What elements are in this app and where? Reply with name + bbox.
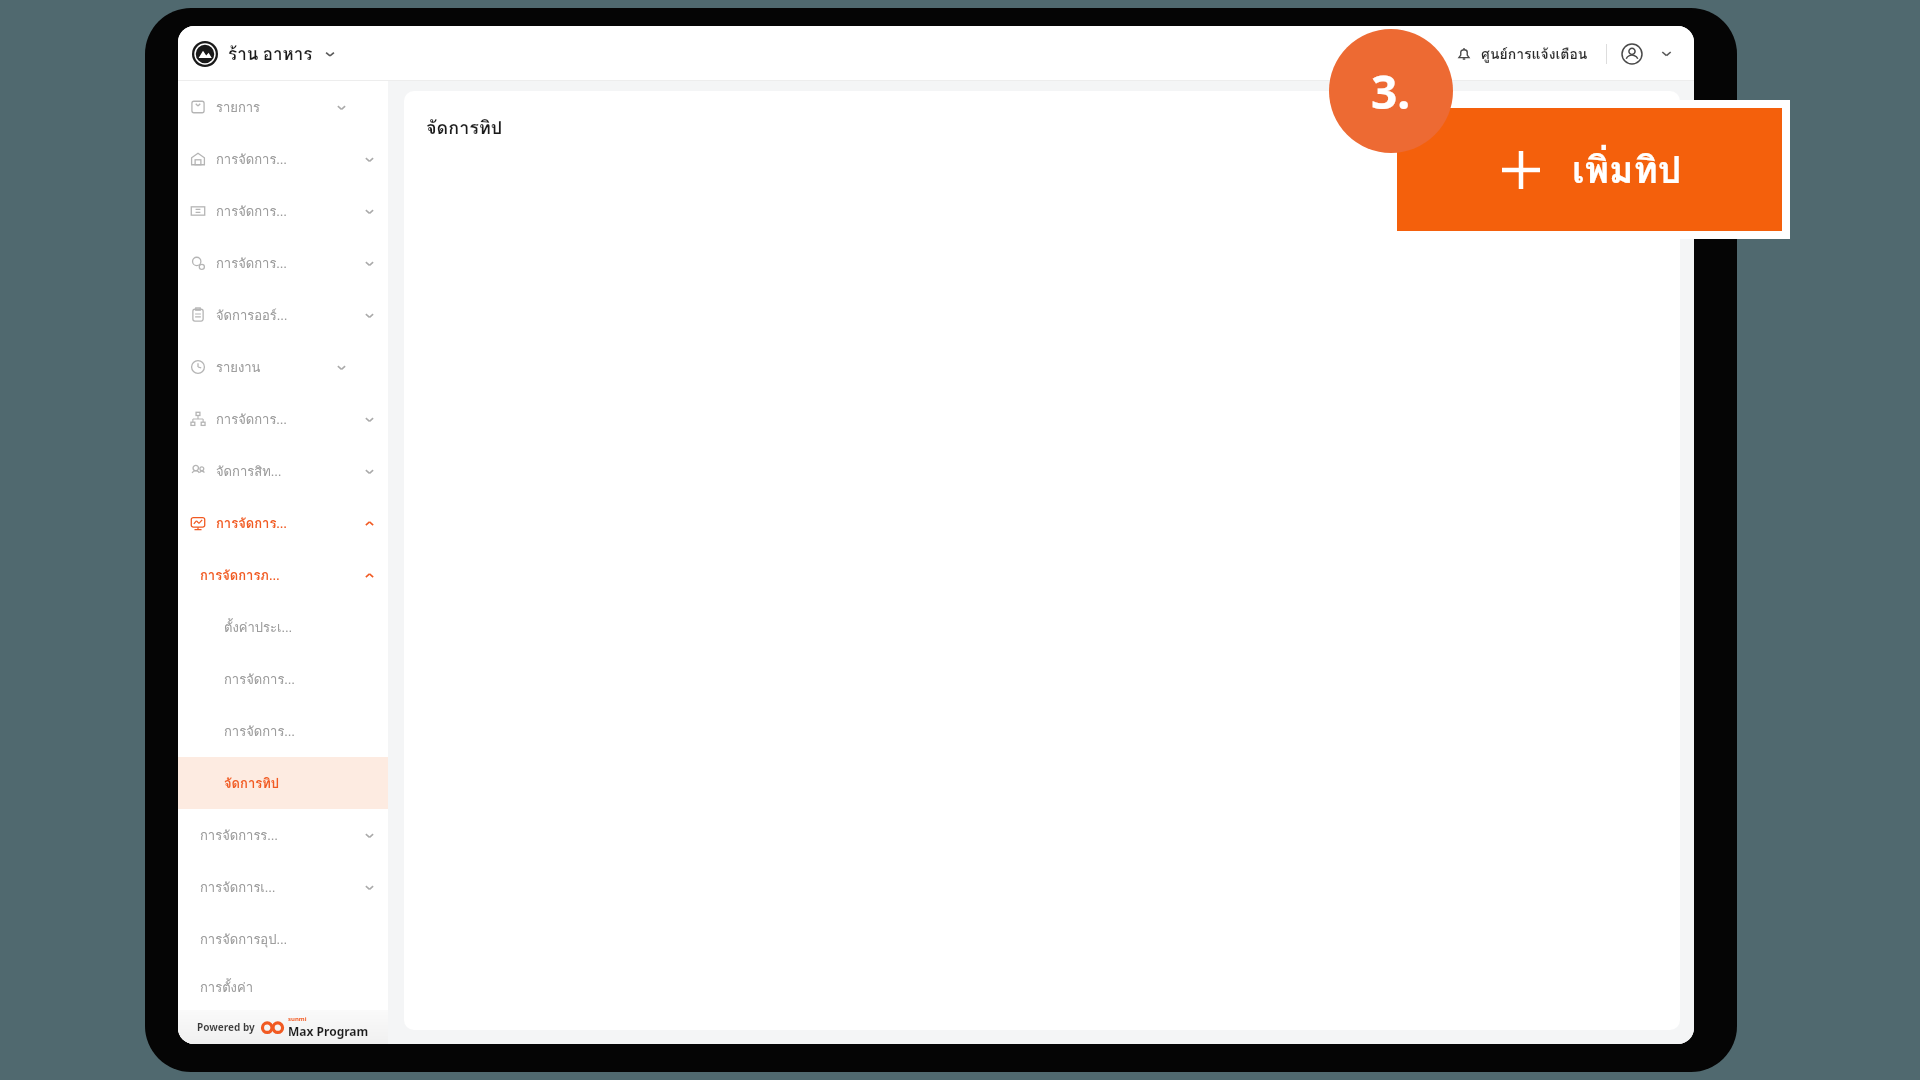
- staticText: รายงาน: [216, 357, 261, 378]
- button[interactable]: เพิ่มทิป: [1397, 108, 1782, 231]
- button[interactable]: การจัดการอุปกรณ์: [178, 913, 388, 965]
- other: Notifications: [1455, 45, 1473, 63]
- staticText: การจัดการภาษี: [224, 721, 300, 742]
- button[interactable]: จัดการออร์เดอร์: [178, 289, 388, 341]
- button[interactable]: การจัดการระบบโต๊ะ: [178, 809, 388, 861]
- staticText: การจัดการสินค้าในสต๊...: [216, 149, 289, 170]
- staticText: การตั้งค่า: [200, 977, 253, 998]
- staticText: การจัดการเครื่องพิมพ์: [200, 877, 281, 898]
- button[interactable]: การจัดการภาษี/ประเภ...: [178, 549, 388, 601]
- button[interactable]: Account: [1621, 43, 1643, 65]
- staticText: Powered by: [197, 1020, 255, 1034]
- staticText: 3.: [1371, 60, 1411, 123]
- staticText: จัดการสิทธิ์บัญชี: [216, 461, 289, 482]
- staticText: การจัดการอุปกรณ์: [200, 929, 288, 950]
- button[interactable]: More: [1659, 46, 1674, 61]
- staticText: จัดการทิป: [426, 113, 503, 142]
- button[interactable]: การจัดการค่าบริการเ...: [178, 653, 388, 705]
- staticText: ร้าน อาหาร: [228, 40, 313, 67]
- staticText: การจัดการตั้งค่าทั้งหมด: [216, 513, 289, 534]
- button[interactable]: Notifications: [1451, 37, 1592, 71]
- button[interactable]: การจัดการภาษี: [178, 705, 388, 757]
- button[interactable]: จัดการสิทธิ์บัญชี: [178, 445, 388, 497]
- staticText: sunmi: [288, 1015, 307, 1023]
- button[interactable]: การจัดการสินค้าในสต๊...: [178, 133, 388, 185]
- button[interactable]: การจัดการช่องทาง Gr...: [178, 393, 388, 445]
- button[interactable]: รายการ: [178, 81, 388, 133]
- staticText: การจัดการส่วนลด: [216, 201, 289, 222]
- staticText: ตั้งค่าประเภทการชำระ...: [224, 617, 300, 638]
- staticText: การจัดการระบบสมาชิก: [216, 253, 289, 274]
- staticText: จัดการทิป: [224, 773, 280, 794]
- button[interactable]: การจัดการเครื่องพิมพ์: [178, 861, 388, 913]
- staticText: รายการ: [216, 97, 261, 118]
- staticText: การจัดการค่าบริการเ...: [224, 669, 300, 690]
- staticText: การจัดการภาษี/ประเภ...: [200, 565, 281, 586]
- staticText: ศูนย์การแจ้งเตือน: [1481, 43, 1588, 65]
- button[interactable]: การจัดการส่วนลด: [178, 185, 388, 237]
- staticText: Max Program: [288, 1023, 369, 1039]
- button[interactable]: การจัดการตั้งค่าทั้งหมด: [178, 497, 388, 549]
- staticText: การจัดการช่องทาง Gr...: [216, 409, 289, 430]
- button[interactable]: จัดการทิป: [178, 757, 388, 809]
- button[interactable]: ตั้งค่าประเภทการชำระ...: [178, 601, 388, 653]
- staticText: การจัดการระบบโต๊ะ: [200, 825, 281, 846]
- button[interactable]: รายงาน: [178, 341, 388, 393]
- staticText: เพิ่มทิป: [1572, 140, 1682, 199]
- button[interactable]: การจัดการระบบสมาชิก: [178, 237, 388, 289]
- button[interactable]: การตั้งค่า: [178, 965, 388, 1010]
- staticText: จัดการออร์เดอร์: [216, 305, 289, 326]
